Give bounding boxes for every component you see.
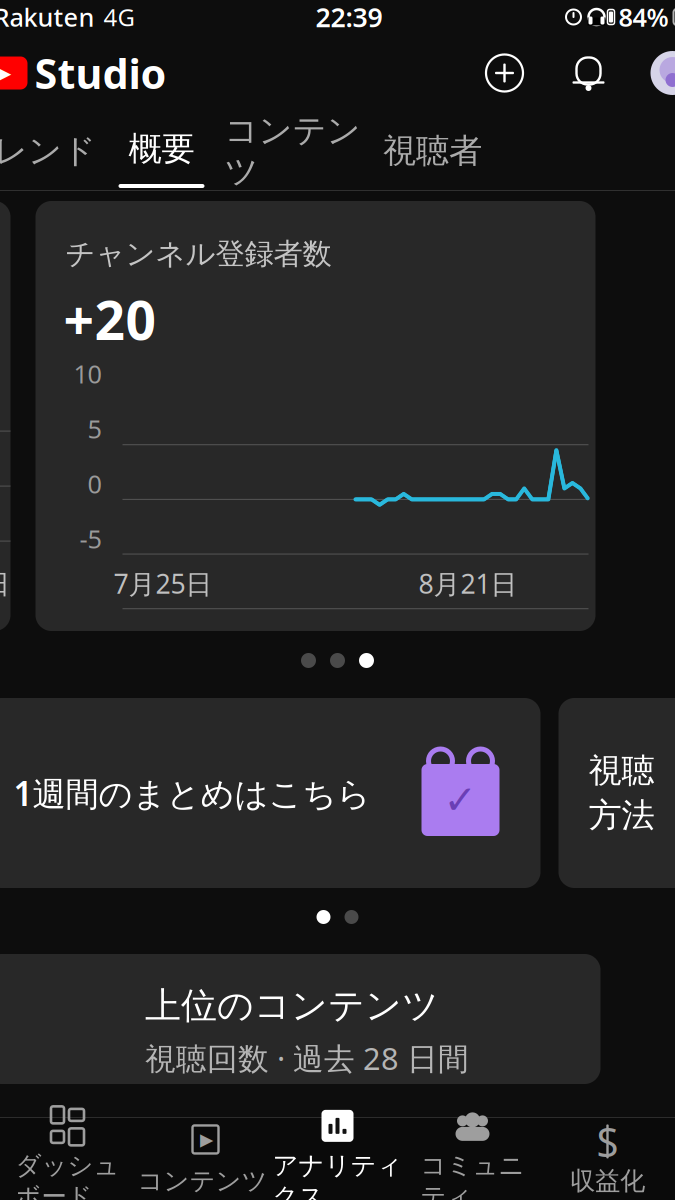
staticText: チャンネル登録者数 — [65, 236, 331, 272]
staticText: 10 — [73, 357, 101, 390]
staticText: コンテンツ — [137, 1165, 267, 1196]
staticText: ✓ — [443, 777, 477, 823]
staticText: 84% — [618, 0, 668, 34]
staticText: ダッシュボード — [15, 1150, 119, 1200]
button[interactable]: Account — [650, 51, 675, 95]
button[interactable]: ダッシュボード — [0, 1119, 135, 1199]
staticText: 1週間のまとめはこちら — [13, 771, 370, 815]
staticText: 4G — [103, 1, 134, 33]
button[interactable]: 上位のコンテンツ — [0, 954, 600, 1084]
button[interactable]: コミュニティ — [405, 1119, 540, 1199]
staticText: 22:39 — [315, 0, 382, 35]
staticText: 方法 — [588, 795, 654, 836]
button[interactable]: トレンド — [0, 115, 105, 187]
button[interactable]: 概要 — [105, 114, 217, 188]
staticText: ▶ — [200, 1130, 213, 1149]
button[interactable]: Create — [482, 51, 526, 95]
staticText: S — [596, 1115, 618, 1168]
staticText: 視聴者 — [383, 130, 482, 171]
button[interactable]: 視聴者 — [367, 115, 497, 187]
staticText: 7月25日 — [113, 566, 212, 601]
staticText: コンテンツ — [224, 110, 360, 192]
staticText: アナリティクス — [272, 1150, 402, 1200]
staticText: 視聴回数 · 過去 28 日間 — [145, 1038, 469, 1078]
staticText: ▶ — [0, 62, 11, 84]
staticText: 視聴 — [588, 750, 654, 791]
button[interactable]: ▶ — [135, 1119, 270, 1199]
staticText: トレンド — [0, 130, 96, 171]
staticText: 概要 — [128, 128, 194, 169]
staticText: Rakuten — [0, 0, 94, 34]
button[interactable]: 視聴方法 — [558, 698, 675, 888]
staticText: 5 — [87, 412, 101, 445]
button[interactable]: アナリティクス — [270, 1119, 405, 1199]
button[interactable]: 1週間のまとめはこちら — [0, 698, 540, 888]
button[interactable]: S — [540, 1119, 675, 1199]
staticText: 上位のコンテンツ — [145, 983, 439, 1028]
staticText: 21日 — [0, 566, 10, 601]
button[interactable]: Notifications — [568, 52, 608, 94]
button[interactable]: YouTube Studio — [0, 46, 166, 100]
staticText: 収益化 — [570, 1165, 645, 1196]
staticText: +20 — [63, 284, 156, 355]
staticText: 8月21日 — [418, 566, 517, 601]
staticText: -5 — [79, 522, 101, 555]
staticText: コミュニティ — [420, 1150, 524, 1200]
button[interactable]: コンテンツ — [217, 115, 367, 187]
staticText: Studio — [34, 46, 166, 100]
staticText: 0 — [87, 467, 101, 500]
